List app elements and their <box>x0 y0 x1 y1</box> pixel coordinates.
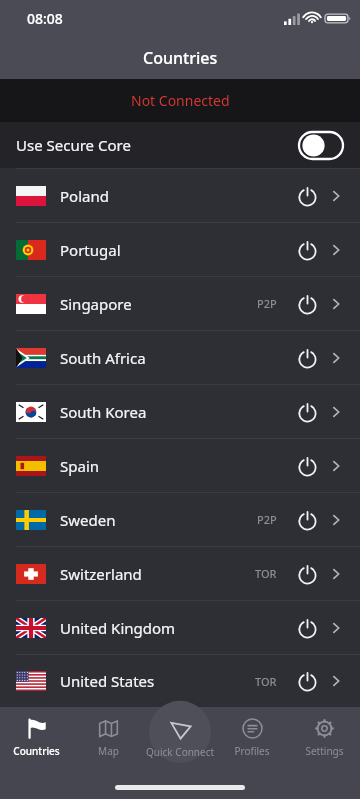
button[interactable]: Open Sweden <box>325 509 347 531</box>
button[interactable]: Settings <box>288 707 360 769</box>
button[interactable]: Singapore <box>0 277 360 330</box>
button[interactable]: Open South Korea <box>325 401 347 423</box>
button[interactable]: Connect to United States <box>292 666 322 696</box>
staticText: Sweden <box>60 510 116 530</box>
staticText: TOR <box>255 674 277 689</box>
staticText: Poland <box>60 186 109 206</box>
button[interactable]: South Africa <box>0 331 360 384</box>
staticText: Map <box>98 744 119 758</box>
staticText: Spain <box>60 456 100 476</box>
button[interactable]: Connect to Poland <box>292 181 322 211</box>
staticText: 08:08 <box>27 9 63 28</box>
button[interactable]: United States <box>0 655 360 707</box>
button[interactable]: Open South Africa <box>325 347 347 369</box>
button[interactable]: Open Switzerland <box>325 563 347 585</box>
staticText: Quick Connect <box>146 745 215 759</box>
staticText: United Kingdom <box>60 618 176 638</box>
button[interactable]: Connect to Switzerland <box>292 559 322 589</box>
button[interactable]: Open Spain <box>325 455 347 477</box>
button[interactable]: Connect to Portugal <box>292 235 322 265</box>
button[interactable]: South Korea <box>0 385 360 438</box>
staticText: Settings <box>305 744 344 758</box>
staticText: Singapore <box>60 294 132 314</box>
button[interactable]: Spain <box>0 439 360 492</box>
button[interactable]: Countries <box>0 707 72 769</box>
staticText: South Korea <box>60 402 147 422</box>
staticText: Profiles <box>234 744 270 758</box>
staticText: P2P <box>257 512 277 527</box>
button[interactable]: Connect to Sweden <box>292 505 322 535</box>
staticText: Not Connected <box>131 91 230 110</box>
staticText: Use Secure Core <box>16 135 131 155</box>
staticText: United States <box>60 671 155 691</box>
button[interactable]: Open United States <box>325 670 347 692</box>
button[interactable]: Sweden <box>0 493 360 546</box>
button[interactable]: Connect to Spain <box>292 451 322 481</box>
button[interactable]: Map <box>72 707 144 769</box>
staticText: Countries <box>13 744 60 758</box>
staticText: Countries <box>143 47 218 69</box>
button[interactable]: Connect to South Korea <box>292 397 322 427</box>
staticText: P2P <box>257 296 277 311</box>
button[interactable]: Portugal <box>0 223 360 276</box>
staticText: South Africa <box>60 348 146 368</box>
staticText: TOR <box>255 566 277 581</box>
button[interactable]: Use Secure Core <box>0 122 360 168</box>
button[interactable]: Connect to South Africa <box>292 343 322 373</box>
staticText: Switzerland <box>60 564 142 584</box>
button[interactable]: Switzerland <box>0 547 360 600</box>
button[interactable]: Profiles <box>216 707 288 769</box>
button[interactable]: Open Portugal <box>325 239 347 261</box>
button[interactable]: Poland <box>0 169 360 222</box>
button[interactable]: Open United Kingdom <box>325 617 347 639</box>
button[interactable]: Quick Connect <box>144 707 216 769</box>
button[interactable]: Connect to United Kingdom <box>292 613 322 643</box>
other: Use Secure Core toggle <box>298 131 344 160</box>
button[interactable]: Connect to Singapore <box>292 289 322 319</box>
button[interactable]: Open Poland <box>325 185 347 207</box>
button[interactable]: Open Singapore <box>325 293 347 315</box>
staticText: Portugal <box>60 240 121 260</box>
button[interactable]: United Kingdom <box>0 601 360 654</box>
